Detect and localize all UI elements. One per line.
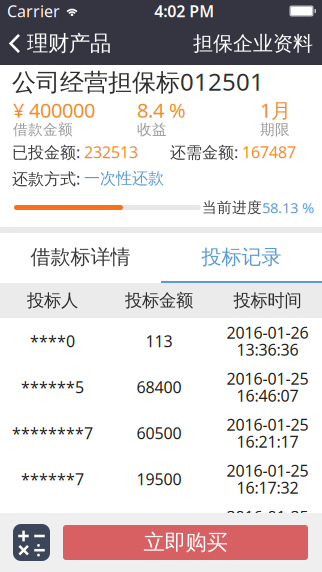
staticText: 借款标详情	[30, 245, 130, 269]
staticText: 167487	[242, 141, 296, 163]
button[interactable]: 借款标详情	[0, 233, 161, 283]
staticText: 理财产品	[27, 30, 111, 57]
staticText: 2016-01-25	[226, 368, 308, 389]
staticText: Carrier	[7, 0, 60, 22]
staticText: ******7	[21, 468, 84, 490]
staticText: 还款方式:	[12, 168, 84, 189]
staticText: 19500	[136, 468, 181, 490]
staticText: 担保企业资料	[193, 31, 313, 56]
staticText: 113	[145, 330, 172, 352]
staticText: ****0	[30, 330, 75, 352]
button[interactable]: 理财产品	[0, 22, 111, 65]
staticText: 58.13 %	[262, 198, 314, 217]
staticText: *****3	[25, 514, 79, 536]
button[interactable]: Calculator	[0, 524, 50, 561]
staticText: 10000	[136, 514, 181, 536]
staticText: ¥ 400000	[13, 97, 95, 123]
staticText: 16:10:02	[236, 523, 298, 544]
staticText: 2016-01-25	[226, 506, 308, 527]
staticText: 68400	[136, 376, 181, 398]
staticText: 期限	[260, 120, 290, 138]
staticText: 8.4 %	[137, 97, 186, 123]
staticText: 投标时间	[233, 290, 301, 311]
staticText: 借款金额	[13, 120, 73, 138]
staticText: 收益	[137, 120, 167, 138]
button[interactable]: 立即购买	[63, 525, 308, 560]
staticText: 投标记录	[201, 245, 281, 269]
staticText: 已投金额:	[12, 141, 84, 163]
staticText: 2016-01-25	[226, 414, 308, 435]
staticText: 232513	[84, 141, 138, 163]
staticText: 16:21:17	[236, 431, 298, 452]
staticText: 16:17:32	[236, 477, 298, 498]
staticText: 一次性还款	[84, 169, 164, 188]
staticText: 16:46:07	[236, 385, 298, 406]
staticText: ******5	[21, 376, 84, 398]
staticText: 还需金额:	[170, 141, 242, 163]
button[interactable]: 投标记录	[161, 233, 322, 283]
staticText: 投标金额	[125, 290, 193, 311]
staticText: ********7	[12, 422, 93, 444]
button[interactable]: 担保企业资料	[193, 22, 322, 65]
staticText: 立即购买	[143, 529, 227, 556]
staticText: 公司经营担保标012501	[12, 66, 264, 97]
staticText: 当前进度	[202, 198, 262, 216]
staticText: 2016-01-26	[226, 322, 308, 343]
staticText: 1月	[260, 97, 291, 123]
staticText: 4:02 PM	[154, 0, 214, 22]
staticText: 13:36:36	[236, 339, 298, 360]
staticText: 60500	[136, 422, 181, 444]
staticText: 2016-01-25	[226, 460, 308, 481]
staticText: 投标人	[27, 290, 78, 311]
